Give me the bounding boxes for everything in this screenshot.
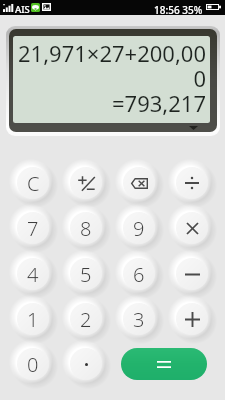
button[interactable]: Equals [121,348,207,380]
button[interactable]: Multiply [165,201,219,255]
staticText: 0 [27,351,39,378]
button[interactable]: C [6,156,60,210]
button[interactable]: 6 [112,247,166,301]
button[interactable]: 8 [59,201,113,255]
button[interactable]: Plus [165,292,219,346]
button[interactable]: 9 [112,201,166,255]
staticText: 2 [80,306,92,333]
staticText: 21,971×27+200,000 =793,217 [18,38,206,118]
button[interactable]: Divide [165,156,219,210]
button[interactable]: Decimal point [59,337,113,391]
button[interactable]: 3 [112,292,166,346]
button[interactable]: 7 [6,201,60,255]
button[interactable]: Backspace [112,156,166,210]
staticText: C [27,170,40,197]
button[interactable]: Minus [165,247,219,301]
staticText: 3 [133,306,145,333]
staticText: 7 [27,215,39,242]
staticText: 1 [27,306,39,333]
staticText: 9 [133,215,145,242]
staticText: 6 [133,261,145,288]
button[interactable]: 1 [6,292,60,346]
staticText: 18:56 35% [154,3,203,17]
button[interactable]: 5 [59,247,113,301]
button[interactable]: 0 [6,337,60,391]
staticText: 5 [80,261,92,288]
staticText: 8 [80,215,92,242]
staticText: AIS [15,3,30,16]
button[interactable]: 2 [59,292,113,346]
staticText: 4 [27,261,39,288]
button[interactable]: Plus minus [59,156,113,210]
button[interactable]: 4 [6,247,60,301]
